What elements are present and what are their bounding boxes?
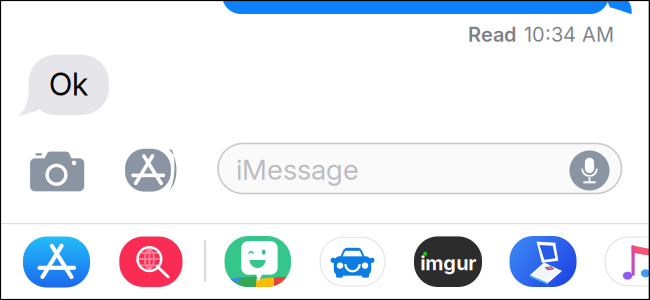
staticText: Ok [49,66,88,103]
button[interactable]: Scanner [509,236,576,287]
button[interactable]: Bitmoji [225,236,291,287]
button[interactable]: Camera [25,148,89,195]
button[interactable]: Dictate [569,150,609,190]
button[interactable]: Car [319,236,386,287]
staticText: imgur [420,251,476,275]
staticText: 10:34 AM [524,22,614,47]
button[interactable]: Music [604,236,650,287]
button[interactable]: Message [216,142,623,195]
button[interactable]: imgur [414,236,482,287]
button[interactable]: Images [119,236,182,287]
button[interactable]: App Store [23,236,90,287]
staticText: Read [468,22,516,47]
button[interactable]: Apps [125,149,178,192]
staticText: iMessage [236,153,359,186]
